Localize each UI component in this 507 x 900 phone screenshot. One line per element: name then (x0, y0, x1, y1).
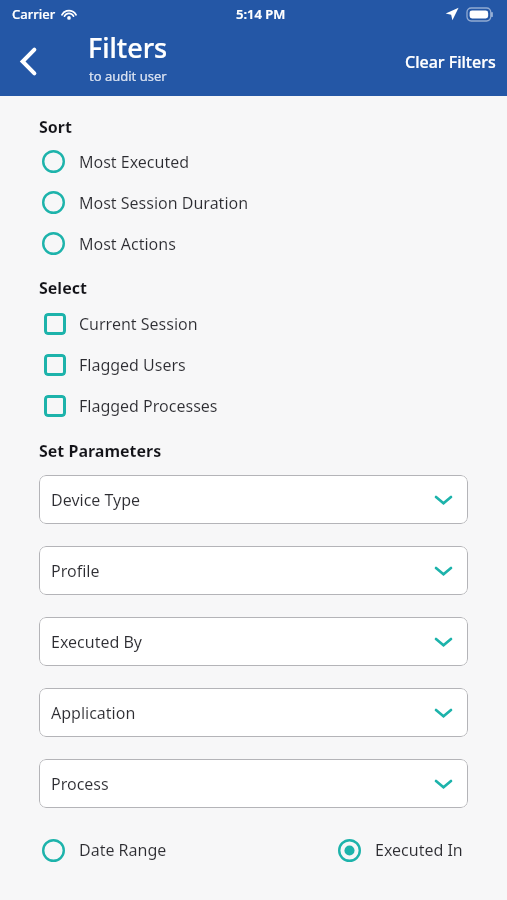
button[interactable]: Application (39, 688, 468, 737)
staticText: Sort (39, 116, 72, 138)
staticText: Clear Filters (405, 51, 496, 73)
staticText: Date Range (79, 839, 167, 861)
staticText: Application (51, 702, 136, 724)
staticText: Most Executed (79, 151, 190, 173)
button[interactable]: Profile (39, 546, 468, 595)
staticText: Set Parameters (39, 440, 162, 462)
button[interactable]: Executed By (39, 617, 468, 666)
staticText: Executed By (51, 631, 142, 653)
staticText: Flagged Users (79, 354, 186, 376)
button[interactable]: Most Session Duration (0, 182, 507, 223)
button[interactable]: Back (6, 39, 50, 83)
button[interactable]: Clear Filters (394, 30, 507, 94)
staticText: Carrier (12, 5, 56, 23)
staticText: Current Session (79, 313, 198, 335)
staticText: Device Type (51, 489, 141, 511)
staticText: Most Actions (79, 233, 176, 255)
button[interactable]: Device Type (39, 475, 468, 524)
button[interactable]: Flagged Users (0, 344, 507, 385)
button[interactable]: Most Actions (0, 223, 507, 264)
staticText: Most Session Duration (79, 192, 249, 214)
staticText: Process (51, 773, 109, 795)
staticText: Select (39, 277, 87, 299)
button[interactable]: Most Executed (0, 141, 507, 182)
button[interactable]: Flagged Processes (0, 385, 507, 426)
staticText: to audit user (89, 67, 167, 85)
button[interactable]: Date Range (0, 829, 253, 871)
button[interactable]: Process (39, 759, 468, 808)
staticText: Flagged Processes (79, 395, 218, 417)
staticText: Executed In (375, 839, 463, 861)
button[interactable]: Current Session (0, 303, 507, 344)
staticText: Filters (88, 29, 168, 66)
button[interactable]: Executed In (253, 829, 507, 871)
staticText: Profile (51, 560, 100, 582)
staticText: 5:14 PM (236, 5, 286, 23)
